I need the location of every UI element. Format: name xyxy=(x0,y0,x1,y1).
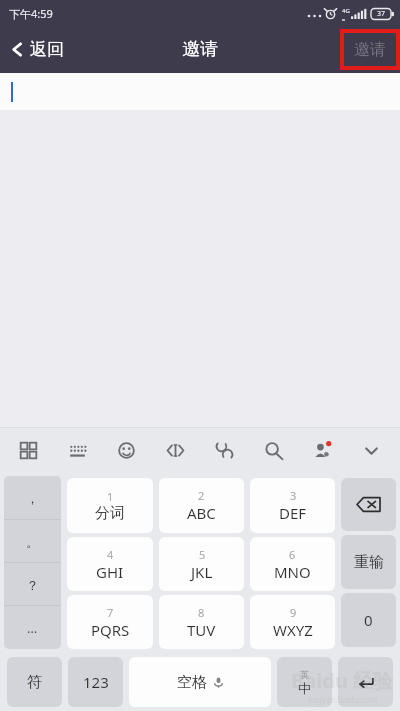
staticText: … xyxy=(27,619,38,637)
button[interactable]: 8 xyxy=(159,595,244,649)
button[interactable]: 1 xyxy=(67,478,153,533)
staticText: ABC xyxy=(187,503,216,523)
button[interactable]: 0 xyxy=(341,593,396,647)
staticText: 4G xyxy=(342,7,350,15)
button[interactable]: 。 xyxy=(4,520,61,563)
staticText: 37 xyxy=(377,9,386,19)
button[interactable]: Enter xyxy=(338,657,393,707)
staticText: MNO xyxy=(274,562,311,582)
staticText: 邀请 xyxy=(182,38,218,61)
staticText: 分词 xyxy=(95,504,125,523)
button[interactable]: 2 xyxy=(159,478,244,533)
button[interactable]: Clipboard xyxy=(200,428,249,472)
staticText: 7 xyxy=(107,605,114,620)
staticText: 重输 xyxy=(354,553,384,572)
staticText: 返回 xyxy=(30,39,64,60)
staticText: WXYZ xyxy=(273,620,313,640)
button[interactable]: 9 xyxy=(250,595,335,649)
staticText: 0 xyxy=(364,610,373,630)
button[interactable]: 英 xyxy=(277,657,332,707)
staticText: 空格 xyxy=(177,673,207,692)
staticText: 9 xyxy=(290,605,297,620)
button[interactable]: 符 xyxy=(7,657,62,707)
staticText: 下午4:59 xyxy=(9,6,53,21)
button[interactable]: 重输 xyxy=(341,535,396,589)
staticText: ？ xyxy=(26,577,39,593)
staticText: 。 xyxy=(26,534,39,550)
staticText: 5 xyxy=(199,547,206,562)
staticText: 英 xyxy=(300,669,309,680)
button[interactable]: Search xyxy=(249,428,298,472)
staticText: DEF xyxy=(279,503,307,523)
button[interactable]: 邀请 xyxy=(344,33,396,66)
button[interactable]: ， xyxy=(4,476,61,520)
staticText: 6 xyxy=(289,547,296,562)
button[interactable]: ？ xyxy=(4,563,61,606)
button[interactable]: Backspace xyxy=(341,478,396,531)
staticText: 中 xyxy=(298,680,311,696)
button[interactable]: 7 xyxy=(67,595,153,649)
button[interactable]: 返回 xyxy=(0,26,78,73)
button[interactable]: 空格 xyxy=(129,657,271,707)
button[interactable]: Keyboard layout xyxy=(53,428,102,472)
staticText: 2 xyxy=(198,488,205,503)
staticText: jingyan.baidu.com xyxy=(308,694,378,705)
staticText: PQRS xyxy=(91,620,130,640)
staticText: 123 xyxy=(83,672,109,692)
staticText: Baidu 经验 xyxy=(291,667,394,694)
staticText: 3 xyxy=(290,488,297,503)
staticText: 4 xyxy=(107,547,114,562)
staticText: 1 xyxy=(107,489,114,504)
staticText: 邀请 xyxy=(354,40,386,60)
button[interactable]: 4 xyxy=(67,537,153,591)
button[interactable]: Emoji xyxy=(102,428,151,472)
button[interactable]: Contacts xyxy=(298,428,347,472)
staticText: TUV xyxy=(187,620,216,640)
button[interactable]: … xyxy=(4,606,61,649)
staticText: 8 xyxy=(198,605,205,620)
button[interactable]: Text editing xyxy=(151,428,200,472)
button[interactable]: 123 xyxy=(68,657,123,707)
button[interactable]: 5 xyxy=(159,537,244,591)
button[interactable]: More apps xyxy=(4,428,53,472)
staticText: GHI xyxy=(96,562,124,582)
staticText: ， xyxy=(26,490,39,506)
button[interactable]: Hide keyboard xyxy=(347,428,396,472)
button[interactable]: 6 xyxy=(250,537,335,591)
staticText: 符 xyxy=(27,673,42,692)
button[interactable]: 3 xyxy=(250,478,335,533)
staticText: JKL xyxy=(191,562,213,582)
